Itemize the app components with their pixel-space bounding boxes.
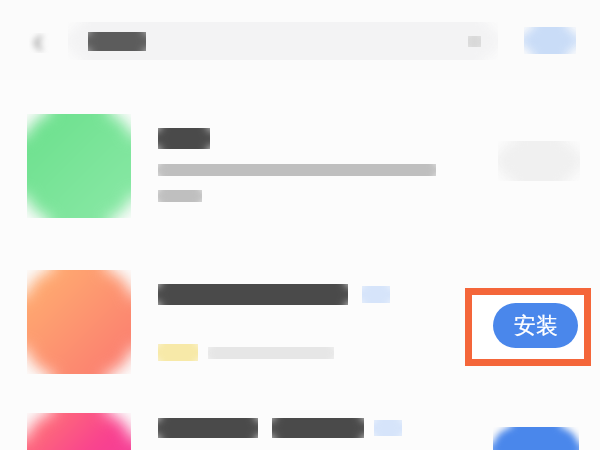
- staticText: 安装: [514, 312, 558, 340]
- button[interactable]: [524, 27, 576, 54]
- button[interactable]: [0, 106, 600, 236]
- button[interactable]: Back: [22, 26, 56, 60]
- button[interactable]: [68, 22, 498, 60]
- button[interactable]: 安装: [493, 303, 578, 348]
- button[interactable]: [493, 427, 579, 450]
- button[interactable]: [0, 262, 600, 392]
